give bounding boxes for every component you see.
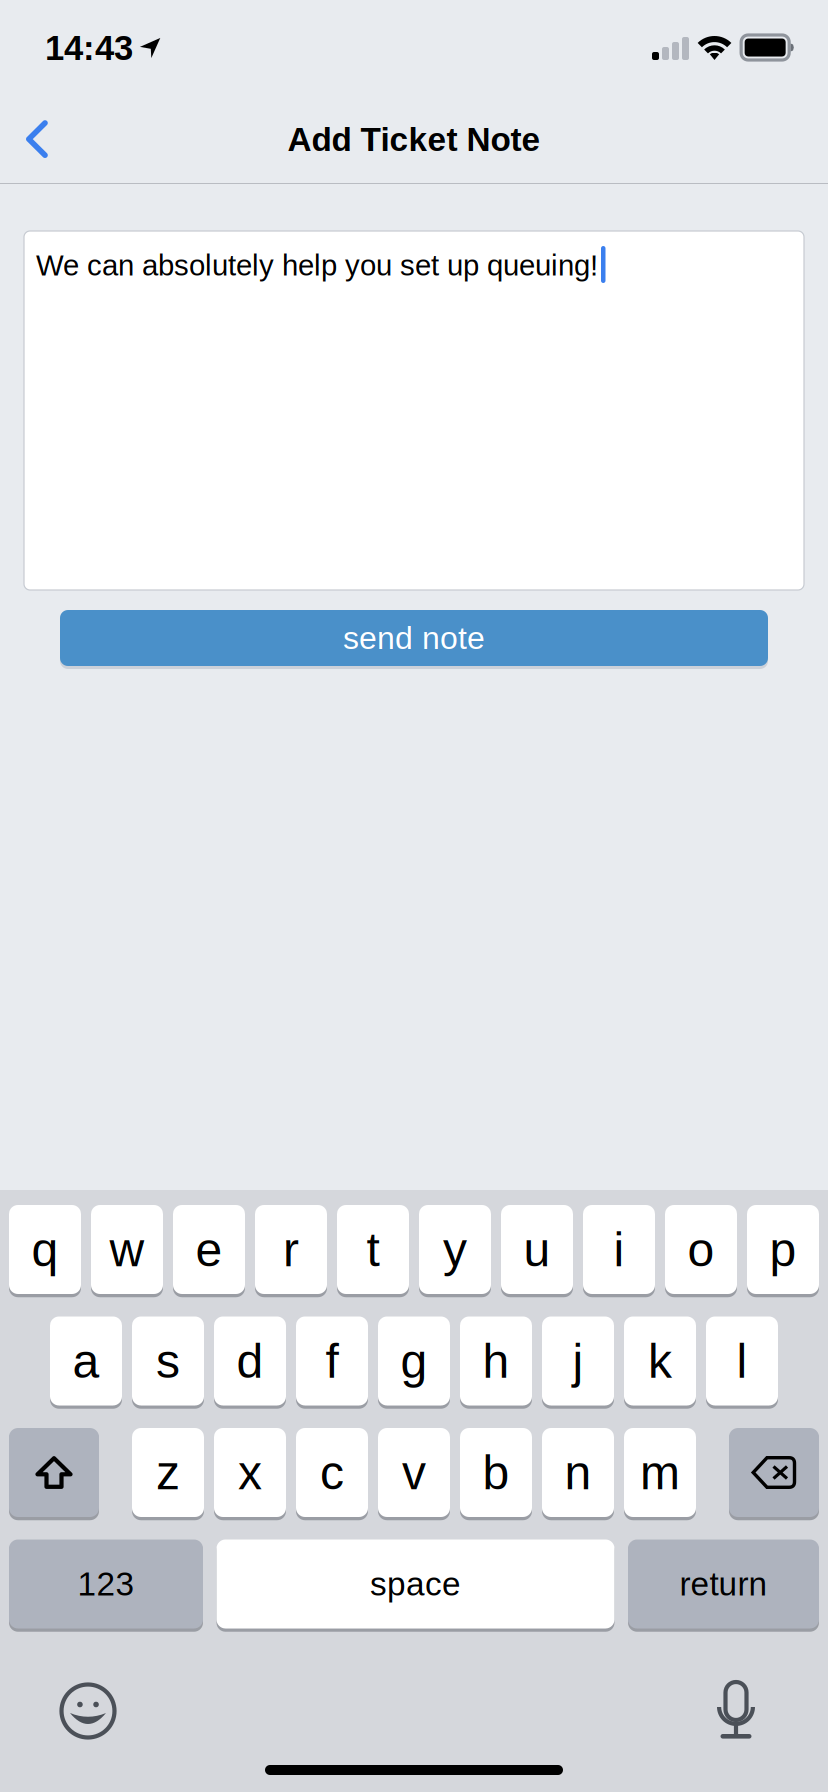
staticText: e [195, 1223, 222, 1276]
button[interactable]: z [132, 1428, 204, 1519]
staticText: t [366, 1223, 379, 1276]
button[interactable]: a [50, 1316, 122, 1408]
staticText: w [109, 1223, 144, 1276]
staticText: send note [343, 620, 485, 656]
staticText: i [613, 1223, 624, 1276]
button[interactable]: k [624, 1316, 696, 1408]
button[interactable]: b [460, 1428, 532, 1519]
staticText: h [482, 1334, 509, 1388]
button[interactable]: s [132, 1316, 204, 1408]
button[interactable]: send note [60, 610, 768, 669]
staticText: g [400, 1334, 427, 1388]
button[interactable]: Back [0, 104, 68, 174]
button[interactable]: i [583, 1205, 655, 1296]
button[interactable]: x [214, 1428, 286, 1519]
staticText: v [402, 1446, 426, 1499]
button[interactable]: d [214, 1316, 286, 1408]
button[interactable]: l [706, 1316, 778, 1408]
button[interactable]: c [296, 1428, 368, 1519]
staticText: o [687, 1223, 714, 1276]
staticText: return [679, 1565, 767, 1603]
button[interactable]: t [337, 1205, 409, 1296]
staticText: We can absolutely help you set up queuin… [36, 249, 598, 282]
button[interactable]: w [91, 1205, 163, 1296]
staticText: m [640, 1446, 680, 1499]
staticText: j [572, 1334, 583, 1388]
button[interactable]: o [665, 1205, 737, 1296]
staticText: s [156, 1334, 180, 1388]
button[interactable]: v [378, 1428, 450, 1519]
staticText: b [482, 1446, 509, 1499]
button[interactable]: f [296, 1316, 368, 1408]
staticText: z [156, 1446, 180, 1499]
button[interactable]: 123 [9, 1539, 203, 1631]
staticText: p [769, 1223, 796, 1276]
staticText: r [283, 1223, 299, 1276]
staticText: 123 [77, 1565, 134, 1603]
staticText: Add Ticket Note [287, 121, 540, 158]
staticText: y [443, 1223, 467, 1276]
button[interactable]: space [216, 1539, 614, 1631]
button[interactable]: j [542, 1316, 614, 1408]
staticText: l [736, 1334, 747, 1388]
staticText: n [564, 1446, 591, 1499]
staticText: space [370, 1565, 461, 1603]
staticText: k [648, 1334, 672, 1388]
staticText: u [523, 1223, 550, 1276]
button[interactable]: h [460, 1316, 532, 1408]
staticText: f [325, 1334, 338, 1388]
button[interactable]: return [628, 1539, 819, 1631]
button[interactable]: Dictation [692, 1670, 819, 1751]
staticText: 14:43 [45, 29, 133, 67]
button[interactable]: g [378, 1316, 450, 1408]
button[interactable]: y [419, 1205, 491, 1296]
button[interactable]: n [542, 1428, 614, 1519]
staticText: c [320, 1446, 344, 1499]
button[interactable]: m [624, 1428, 696, 1519]
button[interactable]: Shift [9, 1428, 99, 1519]
button[interactable]: u [501, 1205, 573, 1296]
button[interactable]: p [747, 1205, 819, 1296]
button[interactable]: r [255, 1205, 327, 1296]
button[interactable]: Delete [729, 1428, 819, 1519]
button[interactable]: e [173, 1205, 245, 1296]
staticText: d [236, 1334, 263, 1388]
button[interactable]: q [9, 1205, 81, 1296]
staticText: a [72, 1334, 99, 1388]
button[interactable]: Emoji keyboard [9, 1670, 139, 1752]
staticText: x [238, 1446, 262, 1499]
staticText: q [31, 1223, 58, 1276]
